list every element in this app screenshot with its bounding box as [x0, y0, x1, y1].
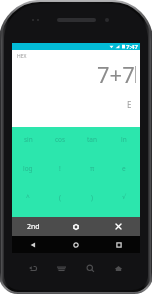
button[interactable]: Home: [113, 263, 124, 274]
staticText: ): [91, 193, 93, 202]
staticText: e: [122, 164, 126, 173]
staticText: (: [59, 193, 61, 202]
staticText: E: [127, 99, 132, 110]
button[interactable]: cos: [44, 127, 76, 151]
button[interactable]: Menu: [56, 263, 67, 274]
button[interactable]: Back: [12, 236, 54, 253]
staticText: π: [90, 164, 95, 173]
staticText: HEX: [17, 53, 27, 60]
button[interactable]: tan: [76, 127, 108, 151]
staticText: ^: [26, 193, 30, 202]
staticText: tan: [87, 135, 98, 144]
button[interactable]: ln: [108, 127, 140, 151]
button[interactable]: 2nd: [12, 217, 54, 236]
staticText: log: [23, 164, 33, 173]
staticText: √: [122, 193, 127, 201]
staticText: cos: [55, 135, 66, 144]
button[interactable]: Back: [27, 263, 38, 274]
staticText: ln: [121, 135, 127, 144]
button[interactable]: Clear: [97, 217, 140, 236]
staticText: sin: [24, 135, 33, 144]
staticText: 7+7: [97, 59, 135, 89]
button[interactable]: Recents: [97, 236, 140, 253]
button[interactable]: sin: [12, 127, 44, 151]
staticText: !: [59, 164, 61, 173]
button[interactable]: log: [12, 156, 44, 180]
button[interactable]: Search: [85, 263, 96, 274]
button[interactable]: Home: [54, 236, 97, 253]
staticText: 7:47: [126, 43, 138, 50]
staticText: 2nd: [27, 222, 40, 232]
button[interactable]: Settings: [54, 217, 97, 236]
